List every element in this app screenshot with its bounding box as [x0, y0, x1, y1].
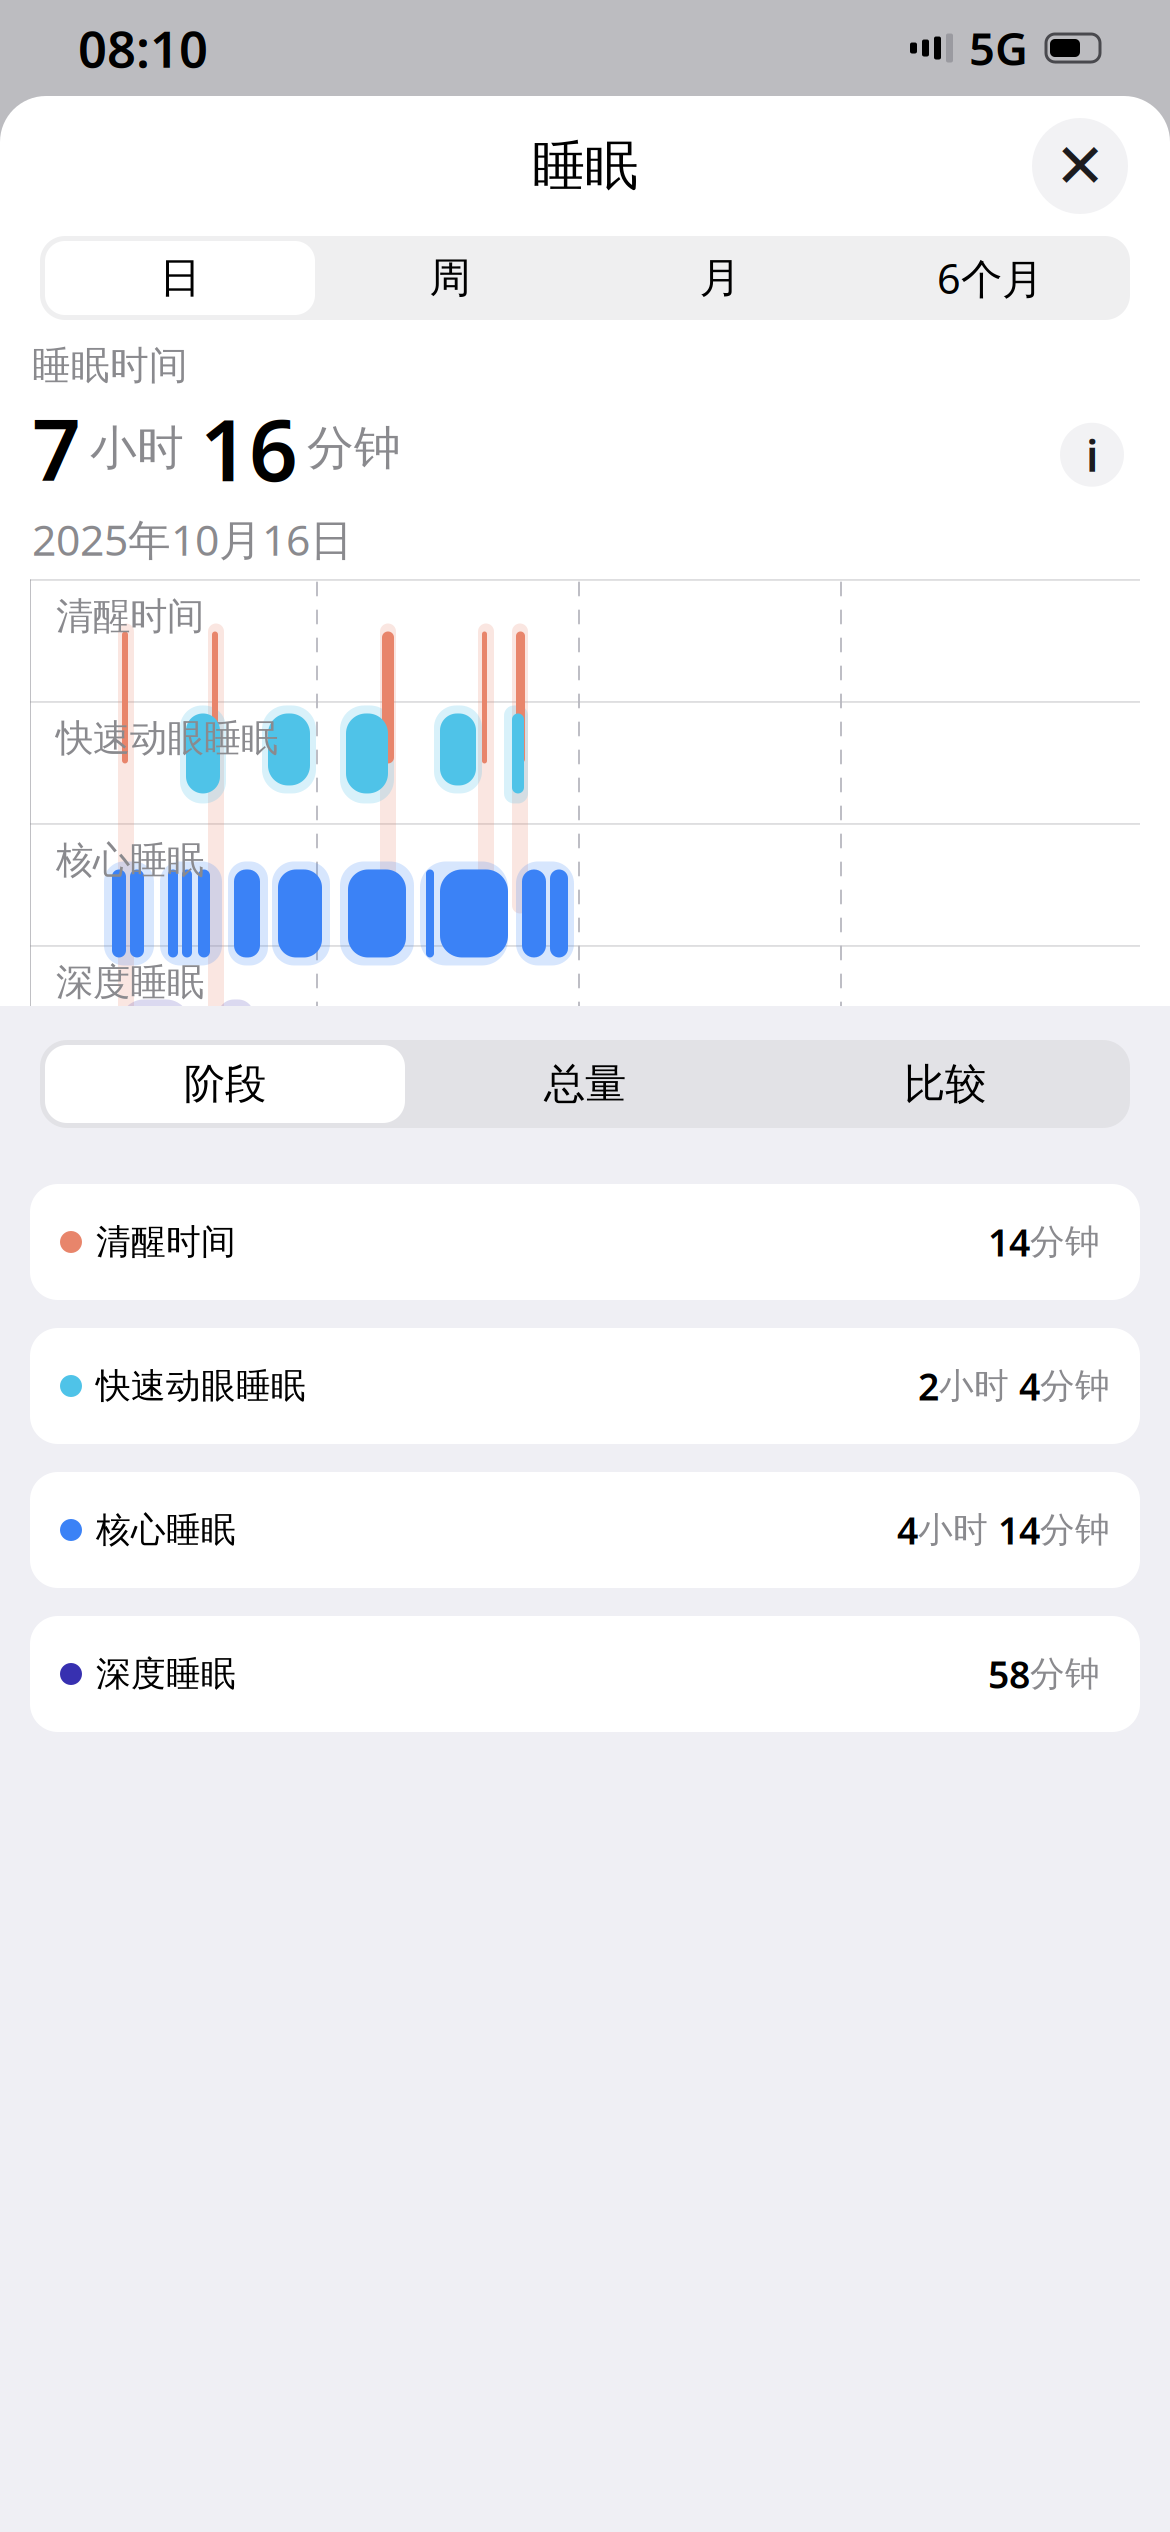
- staticText: 14: [998, 1505, 1040, 1555]
- staticText: 睡眠时间: [32, 342, 188, 389]
- staticText: 04:00: [568, 1071, 675, 1128]
- staticText: 月: [699, 253, 740, 303]
- staticText: 01:00: [306, 1071, 413, 1128]
- staticText: 小时: [918, 1509, 988, 1551]
- staticText: ✕: [1054, 131, 1105, 201]
- staticText: 核心睡眠: [56, 837, 204, 883]
- staticText: 22:00: [34, 1071, 141, 1128]
- staticText: 总量: [544, 1059, 626, 1109]
- button[interactable]: 核心睡眠: [30, 1472, 1140, 1588]
- staticText: i: [1086, 425, 1098, 484]
- staticText: 清醒时间: [96, 1221, 236, 1263]
- staticText: 日: [159, 253, 200, 303]
- staticText: 5G: [969, 18, 1028, 78]
- staticText: 2025年10月16日: [32, 511, 353, 567]
- staticText: 清醒时间: [56, 593, 204, 639]
- button[interactable]: 月: [585, 241, 855, 315]
- button[interactable]: 周: [315, 241, 585, 315]
- staticText: 快速动眼睡眠: [96, 1365, 306, 1407]
- staticText: 分钟: [1030, 1653, 1100, 1695]
- staticText: 2: [918, 1361, 939, 1411]
- staticText: 4: [1019, 1361, 1040, 1411]
- button[interactable]: 6个月: [855, 241, 1125, 315]
- staticText: 07:00: [830, 1071, 937, 1128]
- staticText: 7: [32, 391, 81, 505]
- staticText: 比较: [904, 1059, 986, 1109]
- staticText: 睡眠: [532, 133, 638, 199]
- staticText: 分钟: [1040, 1509, 1110, 1551]
- staticText: 小时: [90, 419, 184, 477]
- button[interactable]: 比较: [765, 1045, 1125, 1123]
- staticText: 核心睡眠: [96, 1509, 236, 1551]
- staticText: 快速动眼睡眠: [56, 715, 278, 761]
- staticText: 小时: [939, 1365, 1009, 1407]
- staticText: 分钟: [307, 419, 401, 477]
- staticText: 08:10: [78, 14, 208, 82]
- staticText: 6个月: [937, 251, 1043, 305]
- button[interactable]: 阶段: [45, 1045, 405, 1123]
- staticText: 分钟: [1030, 1221, 1100, 1263]
- staticText: 深度睡眠: [56, 959, 204, 1005]
- button[interactable]: 总量: [405, 1045, 765, 1123]
- staticText: 58: [988, 1649, 1030, 1699]
- staticText: 分钟: [1040, 1365, 1110, 1407]
- staticText: 阶段: [184, 1059, 266, 1109]
- button[interactable]: 快速动眼睡眠: [30, 1328, 1140, 1444]
- staticText: 16: [200, 391, 298, 505]
- button[interactable]: 清醒时间: [30, 1184, 1140, 1300]
- button[interactable]: 日: [45, 241, 315, 315]
- button[interactable]: 信息: [1060, 423, 1124, 487]
- staticText: 14: [988, 1217, 1030, 1267]
- staticText: 4: [897, 1505, 918, 1555]
- button[interactable]: 深度睡眠: [30, 1616, 1140, 1732]
- button[interactable]: 关闭: [1032, 118, 1128, 214]
- staticText: 周: [429, 253, 470, 303]
- staticText: 深度睡眠: [96, 1653, 236, 1695]
